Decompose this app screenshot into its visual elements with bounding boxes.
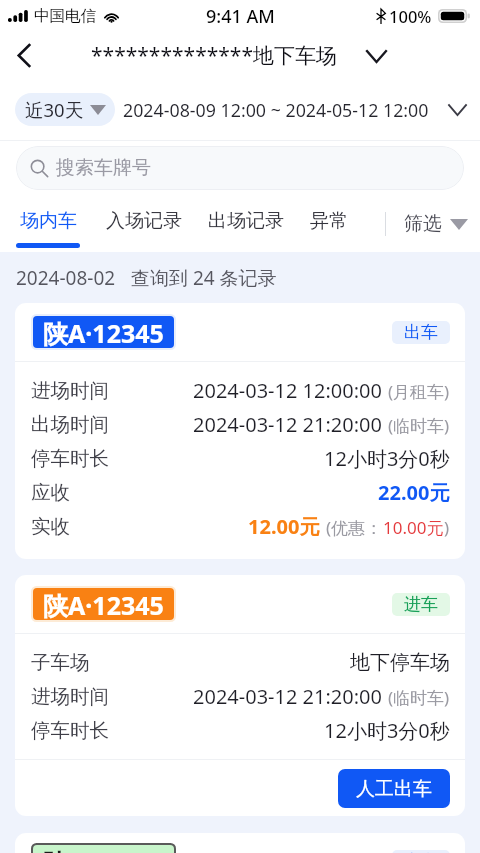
staticText: 2024-03-12 21:20:00 xyxy=(193,683,382,710)
staticText: 筛选 xyxy=(404,212,442,236)
button[interactable]: 陕A·12345 xyxy=(15,575,465,816)
staticText: 陕A·12345 xyxy=(43,588,164,620)
staticText: 出车 xyxy=(404,322,438,343)
staticText: 应收 xyxy=(31,480,70,505)
staticText: 停车时长 xyxy=(31,718,109,743)
staticText: 12小时3分0秒 xyxy=(324,717,450,744)
staticText: 10.00元 xyxy=(383,516,444,539)
staticText: 陕A·12345 xyxy=(43,316,164,348)
staticText: ) xyxy=(444,516,450,539)
staticText: 进场时间 xyxy=(31,684,109,709)
staticText: 地下停车场 xyxy=(350,650,450,675)
staticText: 出场时间 xyxy=(31,412,109,437)
button[interactable]: 陕A·12345 xyxy=(15,833,465,853)
staticText: 出场记录 xyxy=(208,209,284,233)
button[interactable]: Back xyxy=(0,32,47,79)
staticText: 进车 xyxy=(404,594,438,615)
button[interactable]: 搜索车牌号 xyxy=(16,146,464,190)
button[interactable]: 近30天 xyxy=(15,93,115,126)
staticText: 场内车 xyxy=(20,209,77,233)
staticText: 搜索车牌号 xyxy=(56,156,151,180)
staticText: 2024-08-02 xyxy=(16,265,116,291)
staticText: 异常 xyxy=(310,209,348,233)
staticText: 9:41 AM xyxy=(206,4,275,29)
staticText: 入场记录 xyxy=(106,209,182,233)
staticText: 子车场 xyxy=(31,650,90,675)
staticText: 近30天 xyxy=(25,97,84,122)
button[interactable]: 筛选 xyxy=(404,206,468,242)
staticText: 12.00元 xyxy=(248,513,320,540)
staticText: (临时车) xyxy=(388,414,450,437)
staticText: (月租车) xyxy=(388,380,450,403)
staticText: **************地下车场 xyxy=(91,41,337,70)
button[interactable]: Select date range xyxy=(442,95,472,125)
staticText: 12小时3分0秒 xyxy=(324,445,450,472)
staticText: 进场时间 xyxy=(31,378,109,403)
button[interactable]: 陕A·12345 xyxy=(15,303,465,559)
button[interactable]: 场内车 xyxy=(16,195,80,252)
staticText: 出车 xyxy=(404,851,438,853)
staticText: (优惠： xyxy=(326,516,383,539)
button[interactable]: 入场记录 xyxy=(106,195,182,252)
staticText: (临时车) xyxy=(388,686,450,709)
staticText: 100% xyxy=(389,5,432,27)
button[interactable]: 2024-08-09 12:00 ~ 2024-05-12 12:00 xyxy=(123,98,442,122)
button[interactable]: 出场记录 xyxy=(208,195,284,252)
staticText: 陕A·12345 xyxy=(43,845,164,853)
button[interactable]: 人工出车 xyxy=(338,769,450,808)
staticText: 实收 xyxy=(31,514,70,539)
staticText: 2024-08-09 12:00 ~ 2024-05-12 12:00 xyxy=(123,98,429,122)
button[interactable]: 异常 xyxy=(310,195,348,252)
button[interactable]: Switch parking lot xyxy=(363,43,389,69)
staticText: 中国电信 xyxy=(34,6,96,26)
staticText: 人工出车 xyxy=(356,777,432,801)
staticText: 停车时长 xyxy=(31,446,109,471)
staticText: 22.00元 xyxy=(378,479,450,506)
staticText: 2024-03-12 21:20:00 xyxy=(193,411,382,438)
staticText: 查询到 24 条记录 xyxy=(131,265,277,291)
staticText: 2024-03-12 12:00:00 xyxy=(193,377,382,404)
